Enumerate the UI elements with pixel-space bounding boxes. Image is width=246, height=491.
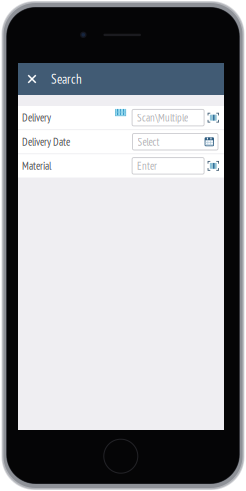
staticText: Select: [137, 135, 159, 149]
staticText: Delivery Date: [22, 135, 70, 149]
staticText: Search: [51, 70, 82, 87]
staticText: Delivery: [22, 111, 51, 124]
button[interactable]: Search: [51, 63, 82, 95]
button[interactable]: Close: [21, 63, 43, 95]
button[interactable]: Delivery: [18, 106, 224, 129]
staticText: Material: [22, 159, 51, 173]
staticText: Scan\Multiple: [137, 111, 188, 124]
staticText: Enter: [137, 159, 157, 173]
button[interactable]: Material: [18, 154, 224, 177]
button[interactable]: Delivery Date: [18, 130, 224, 153]
